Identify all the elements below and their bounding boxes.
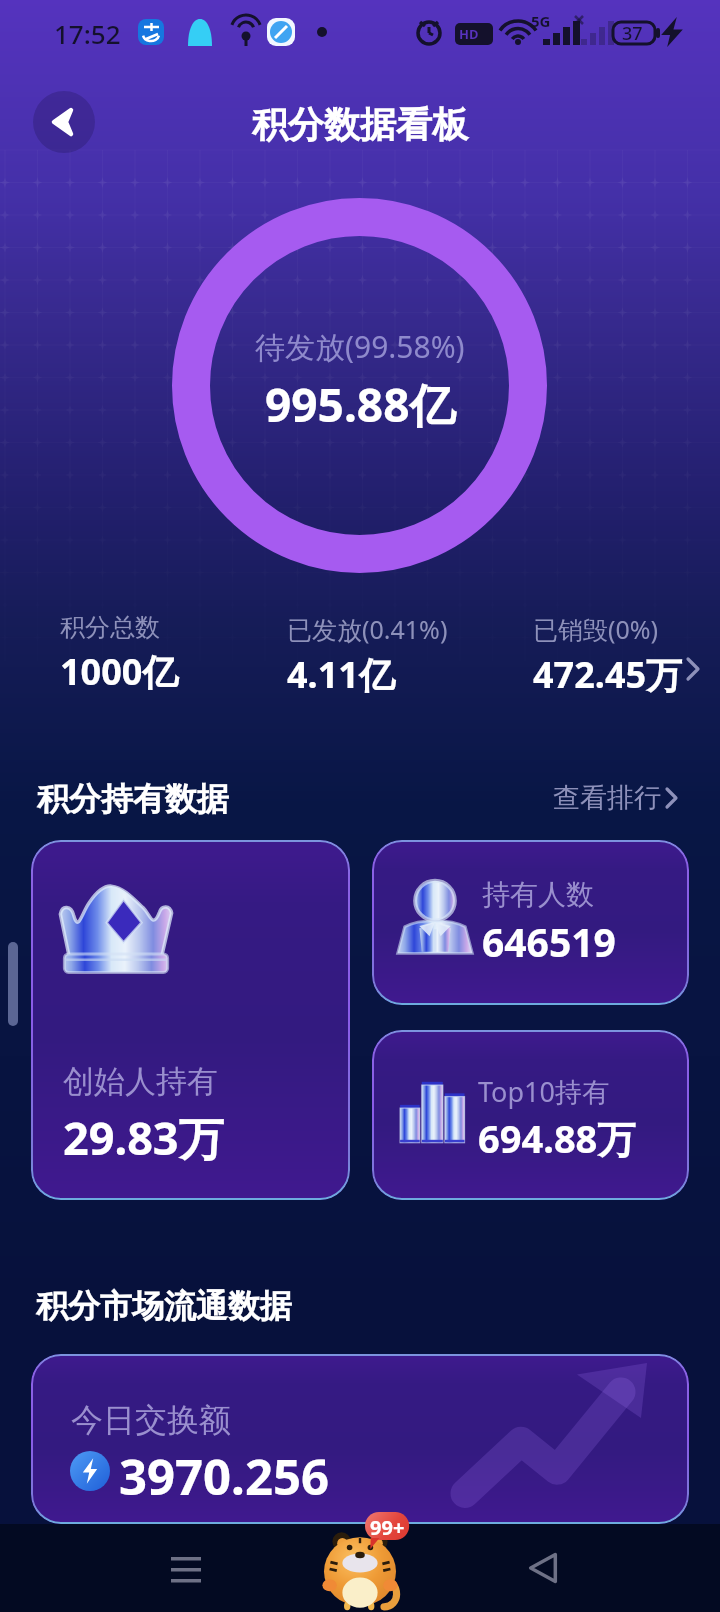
staticText: 持有人数 [482,877,594,912]
staticText: 4.11亿 [287,650,395,699]
staticText: 今日交换额 [71,1400,231,1440]
button[interactable]: Recent apps [158,1540,214,1596]
staticText: 已销毁(0%) [533,612,659,646]
button[interactable]: 已发放(0.41%) [287,612,448,699]
button[interactable]: Back [515,1540,571,1596]
button[interactable]: More [684,652,704,684]
staticText: 995.88亿 [265,373,456,436]
staticText: 积分总数 [60,612,160,643]
staticText: 查看排行 [553,781,661,815]
staticText: 已发放(0.41%) [287,612,448,646]
staticText: 37 [622,21,643,46]
staticText: 472.45万 [533,650,683,699]
staticText: HD [459,25,479,43]
staticText: 待发放(99.58%) [255,326,465,367]
button[interactable]: 积分总数 [60,612,179,696]
button[interactable]: Assistant [320,1526,400,1612]
staticText: 3970.256 [119,1443,329,1510]
button[interactable]: 今日交换额 [31,1354,689,1524]
staticText: 99+ [370,1514,405,1541]
staticText: 5G [531,11,551,31]
button[interactable]: 查看排行 [553,781,681,815]
staticText: 694.88万 [478,1112,636,1164]
staticText: 17:52 [54,16,121,51]
staticText: Top10持有 [478,1073,609,1110]
staticText: 1000亿 [60,647,179,696]
button[interactable]: Top10持有 [372,1030,689,1200]
staticText: 646519 [482,915,616,968]
staticText: 积分市场流通数据 [36,1286,292,1326]
button[interactable]: 已销毁(0%) [533,612,683,699]
staticText: 29.83万 [63,1107,224,1168]
button[interactable]: 持有人数 [372,840,689,1005]
button[interactable]: Back [33,91,95,153]
staticText: 创始人持有 [63,1062,218,1101]
staticText: 积分持有数据 [37,779,229,819]
button[interactable]: 创始人持有 [31,840,350,1200]
staticText: 积分数据看板 [252,102,468,147]
